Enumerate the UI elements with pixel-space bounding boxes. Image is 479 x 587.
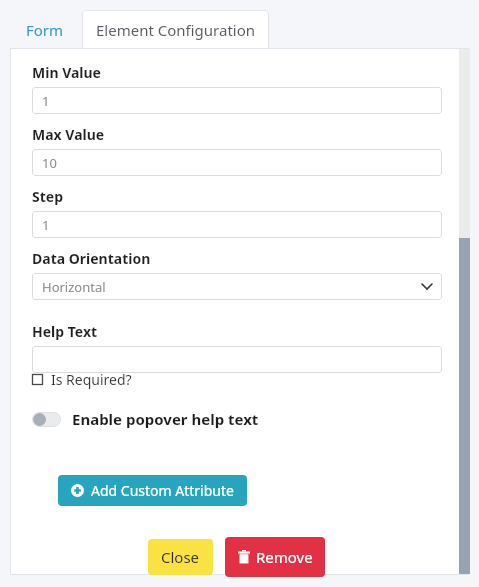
staticText: Remove <box>256 547 313 567</box>
staticText: Element Configuration <box>96 20 256 40</box>
staticText: Is Required? <box>51 370 132 389</box>
button[interactable]: Add Custom Attribute <box>58 475 247 506</box>
button[interactable] <box>32 346 442 373</box>
button[interactable]: Close <box>148 539 213 575</box>
staticText: Step <box>32 187 63 206</box>
staticText: Close <box>161 547 200 567</box>
staticText: Form <box>26 20 64 40</box>
other: Remove <box>238 550 250 564</box>
button[interactable]: Remove <box>225 537 325 577</box>
button[interactable]: 1 <box>32 87 442 114</box>
staticText: 10 <box>42 154 57 172</box>
staticText: Help Text <box>32 322 98 341</box>
staticText: Horizontal <box>42 278 106 296</box>
staticText: Data Orientation <box>32 249 151 268</box>
button[interactable]: Enable popover help text <box>32 407 259 431</box>
button[interactable]: Form <box>14 12 76 48</box>
button[interactable]: Is Required? <box>32 369 132 389</box>
staticText: Add Custom Attribute <box>91 481 234 500</box>
button[interactable]: 10 <box>32 149 442 176</box>
staticText: Enable popover help text <box>72 409 259 429</box>
button[interactable]: Horizontal <box>32 273 442 300</box>
staticText: Max Value <box>32 125 105 144</box>
button[interactable]: Element Configuration <box>82 10 269 49</box>
staticText: 1 <box>42 92 50 110</box>
staticText: 1 <box>42 216 50 234</box>
staticText: Min Value <box>32 63 101 82</box>
button[interactable]: 1 <box>32 211 442 238</box>
